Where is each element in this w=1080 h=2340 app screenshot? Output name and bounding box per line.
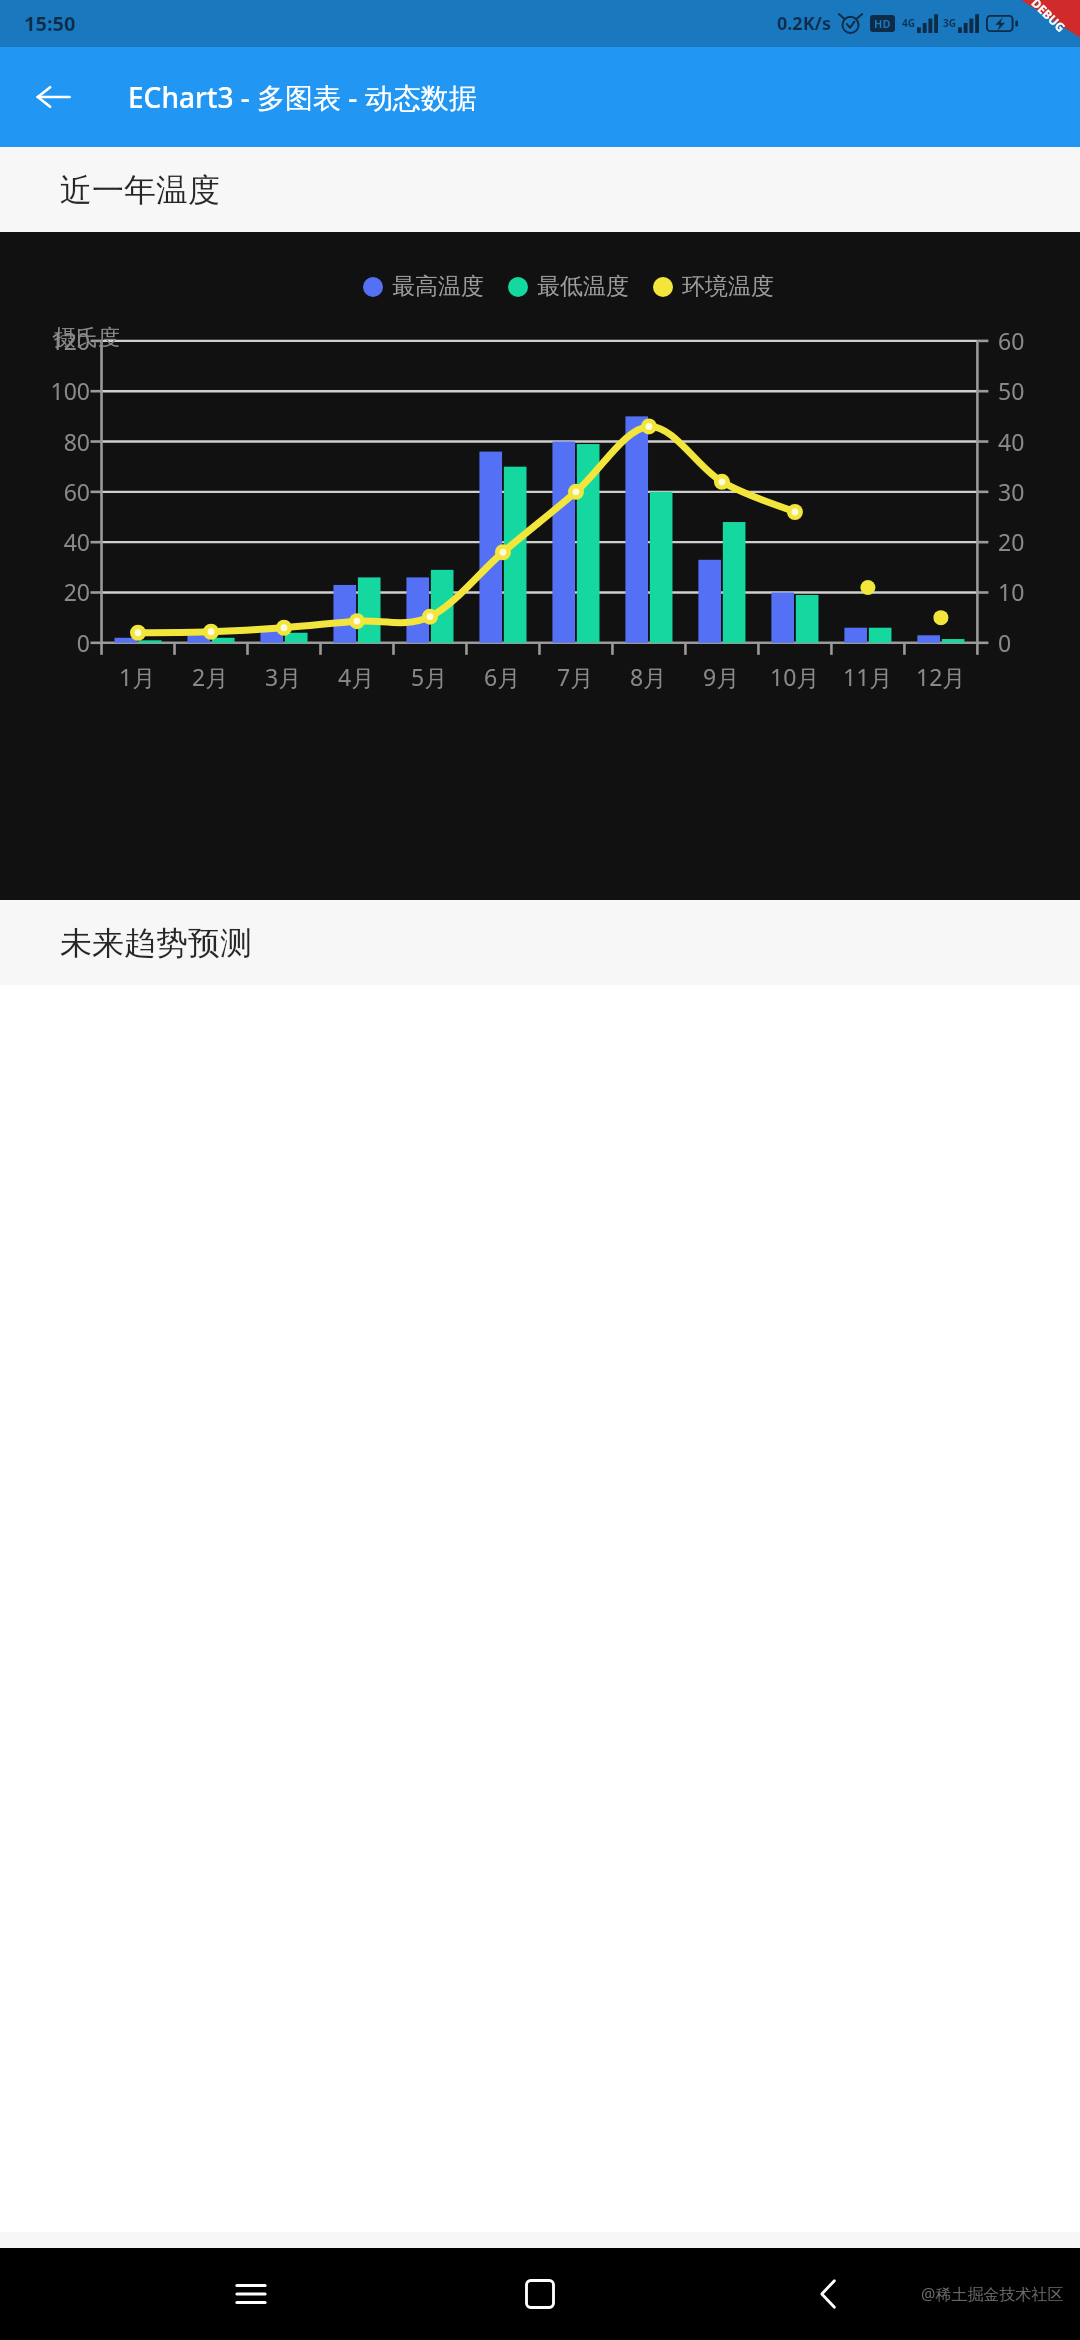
staticText: 15:50 (24, 10, 76, 37)
button[interactable]: Back (18, 62, 88, 132)
staticText: 3G (943, 16, 956, 30)
staticText: 100 (6, 375, 90, 406)
staticText: 3月 (265, 661, 302, 692)
staticText: HD (874, 16, 891, 31)
staticText: 11月 (843, 661, 893, 692)
staticText: 80 (6, 426, 90, 457)
staticText: 50 (998, 375, 1074, 406)
staticText: 未来趋势预测 (60, 923, 252, 963)
staticText: DEBUG (1028, 0, 1069, 35)
staticText: 4月 (338, 661, 375, 692)
staticText: 0.2K/s (777, 11, 832, 36)
staticText: 40 (998, 426, 1074, 457)
staticText: 2月 (192, 661, 229, 692)
staticText: 20 (998, 526, 1074, 557)
button[interactable]: Back (791, 2256, 867, 2332)
staticText: 10 (998, 576, 1074, 607)
staticText: 4G (902, 16, 915, 30)
button[interactable]: Home (502, 2256, 578, 2332)
staticText: 0 (998, 627, 1074, 658)
staticText: 40 (6, 526, 90, 557)
button[interactable]: 最高温度 (363, 272, 484, 301)
staticText: 20 (6, 576, 90, 607)
button[interactable]: 未来趋势预测 (0, 900, 1080, 985)
staticText: 5月 (411, 661, 448, 692)
button[interactable]: 近一年温度 (0, 147, 1080, 232)
staticText: 最低温度 (537, 272, 629, 301)
staticText: 60 (998, 325, 1074, 356)
staticText: 近一年温度 (60, 170, 220, 210)
button[interactable]: 环境温度 (653, 272, 774, 301)
staticText: 10月 (770, 661, 820, 692)
staticText: 7月 (557, 661, 594, 692)
staticText: 60 (6, 476, 90, 507)
staticText: EChart3 - 多图表 - 动态数据 (128, 78, 477, 116)
staticText: 12月 (916, 661, 966, 692)
staticText: 8月 (630, 661, 667, 692)
button[interactable]: 最低温度 (508, 272, 629, 301)
button[interactable]: Recent apps (213, 2256, 289, 2332)
staticText: 环境温度 (682, 272, 774, 301)
staticText: 最高温度 (392, 272, 484, 301)
staticText: 9月 (703, 661, 740, 692)
staticText: 30 (998, 476, 1074, 507)
staticText: 1月 (119, 661, 156, 692)
staticText: 0 (6, 627, 90, 658)
staticText: 6月 (484, 661, 521, 692)
staticText: 摄氏度 (54, 324, 120, 352)
staticText: @稀土掘金技术社区 (921, 2283, 1064, 2305)
staticText: 120 (6, 325, 90, 356)
